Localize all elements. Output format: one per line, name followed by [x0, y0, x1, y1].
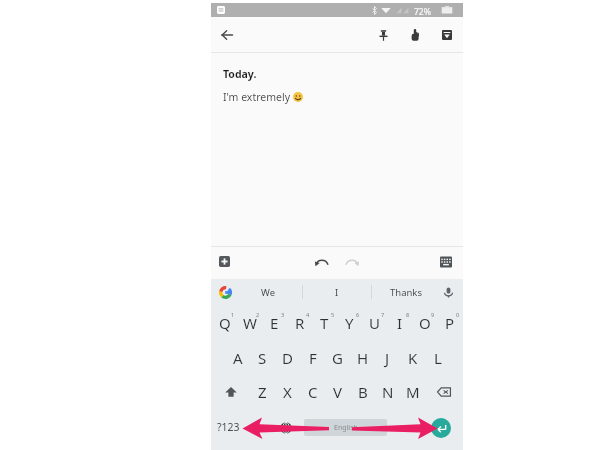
button[interactable]: R: [287, 305, 312, 340]
staticText: F: [309, 348, 317, 368]
staticText: S: [258, 348, 267, 368]
button[interactable]: O: [412, 305, 437, 340]
button[interactable]: I: [387, 305, 412, 340]
button[interactable]: D: [275, 340, 300, 375]
button[interactable]: P: [437, 305, 462, 340]
staticText: O: [419, 313, 431, 333]
button[interactable]: Google search: [216, 283, 234, 301]
button[interactable]: K: [400, 340, 425, 375]
button[interactable]: H: [350, 340, 375, 375]
button[interactable]: Q: [212, 305, 237, 340]
staticText: I: [335, 286, 339, 299]
button[interactable]: W: [237, 305, 262, 340]
button[interactable]: B: [350, 375, 375, 409]
staticText: 0: [456, 311, 460, 318]
staticText: C: [308, 382, 318, 402]
button[interactable]: M: [400, 375, 425, 409]
button[interactable]: ?123: [209, 417, 247, 437]
button[interactable]: S: [250, 340, 275, 375]
button[interactable]: Change language: [275, 417, 296, 438]
staticText: L: [434, 348, 442, 368]
staticText: T: [320, 313, 329, 333]
staticText: B: [358, 382, 368, 402]
button[interactable]: Voice input: [440, 284, 457, 301]
button[interactable]: X: [275, 375, 300, 409]
button[interactable]: Undo: [310, 250, 332, 272]
button[interactable]: J: [375, 340, 400, 375]
staticText: R: [295, 313, 305, 333]
staticText: D: [282, 348, 293, 368]
staticText: 72%: [414, 6, 431, 18]
button[interactable]: Add: [214, 251, 235, 272]
staticText: Z: [258, 382, 267, 402]
staticText: N: [382, 382, 394, 402]
button[interactable]: E: [262, 305, 287, 340]
staticText: English: [334, 423, 358, 433]
staticText: 2: [256, 311, 260, 318]
staticText: I'm extremely: [223, 90, 293, 104]
staticText: We: [261, 286, 276, 299]
staticText: W: [243, 313, 257, 333]
button[interactable]: U: [362, 305, 387, 340]
button[interactable]: Backspace: [425, 375, 463, 409]
button[interactable]: Shift: [211, 375, 250, 409]
button[interactable]: Redo: [341, 250, 363, 272]
button[interactable]: N: [375, 375, 400, 409]
staticText: U: [369, 313, 380, 333]
staticText: M: [406, 382, 420, 402]
button[interactable]: F: [300, 340, 325, 375]
staticText: 3: [281, 311, 285, 318]
staticText: E: [270, 313, 279, 333]
staticText: H: [357, 348, 369, 368]
button[interactable]: Pin note: [371, 23, 395, 47]
staticText: G: [332, 348, 343, 368]
staticText: 1: [231, 311, 235, 318]
button[interactable]: V: [325, 375, 350, 409]
button[interactable]: Hide keyboard: [435, 251, 457, 273]
staticText: .: [403, 420, 406, 434]
staticText: V: [333, 382, 343, 402]
button[interactable]: English: [304, 419, 387, 436]
staticText: Thanks: [390, 286, 422, 299]
button[interactable]: Enter: [431, 418, 451, 438]
staticText: 6: [356, 311, 360, 318]
staticText: P: [445, 313, 455, 333]
button[interactable]: Z: [250, 375, 275, 409]
button[interactable]: Reminder: [403, 23, 427, 47]
button[interactable]: .: [394, 417, 414, 437]
button[interactable]: G: [325, 340, 350, 375]
staticText: Y: [345, 313, 354, 333]
staticText: I: [397, 313, 403, 333]
button[interactable]: Y: [337, 305, 362, 340]
staticText: J: [385, 348, 390, 368]
staticText: 7: [381, 311, 385, 318]
staticText: Q: [219, 313, 231, 333]
button[interactable]: T: [312, 305, 337, 340]
staticText: ?123: [217, 420, 240, 434]
button[interactable]: Back: [216, 24, 238, 46]
button[interactable]: Archive: [435, 23, 459, 47]
staticText: 5: [331, 311, 335, 318]
button[interactable]: We: [234, 279, 302, 305]
button[interactable]: C: [300, 375, 325, 409]
staticText: 9: [431, 311, 435, 318]
staticText: K: [408, 348, 418, 368]
staticText: 8: [406, 311, 410, 318]
staticText: 4: [306, 311, 310, 318]
button[interactable]: Thanks: [372, 279, 440, 305]
staticText: Today.: [223, 67, 257, 81]
button[interactable]: L: [425, 340, 450, 375]
staticText: X: [283, 382, 292, 402]
staticText: A: [233, 348, 243, 368]
button[interactable]: I: [303, 279, 371, 305]
button[interactable]: A: [225, 340, 250, 375]
